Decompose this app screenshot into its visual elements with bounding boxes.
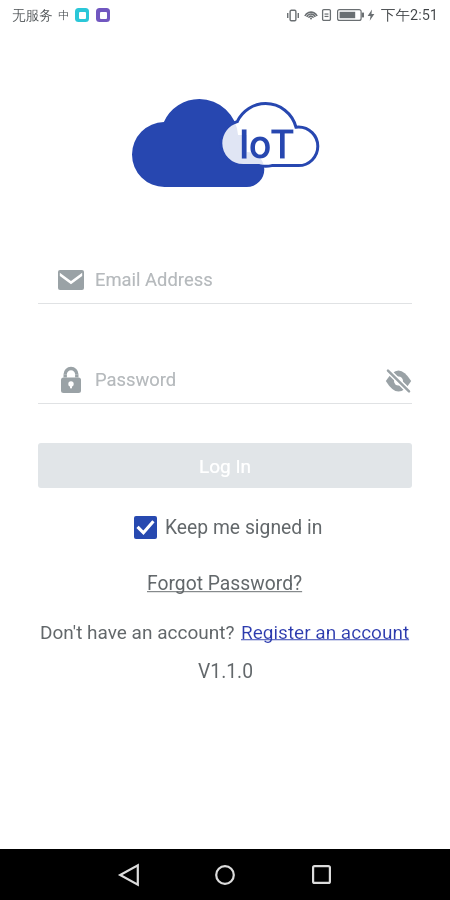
staticText: V1.1.0 (198, 660, 253, 683)
button[interactable]: Password (38, 357, 412, 403)
staticText: IoT (239, 123, 294, 168)
button[interactable]: Register an account (241, 621, 410, 643)
staticText: 中 (58, 8, 69, 22)
staticText: 无服务 (12, 7, 53, 24)
staticText: Keep me signed in (165, 516, 323, 539)
staticText: 下午2:51 (381, 6, 438, 24)
button[interactable]: Keep me signed in (134, 516, 323, 539)
staticText: Don't have an account? (40, 621, 235, 643)
button[interactable]: Email Address (38, 257, 412, 303)
button[interactable]: Home (177, 849, 273, 900)
button[interactable]: Recent apps (273, 849, 369, 900)
staticText: Log In (199, 455, 252, 477)
staticText: Email Address (95, 269, 213, 291)
button[interactable]: Back (81, 849, 177, 900)
staticText: Password (95, 369, 177, 391)
button[interactable]: Forgot Password? (143, 570, 307, 597)
button[interactable]: Log In (38, 443, 412, 488)
button[interactable]: Show password (384, 366, 412, 394)
